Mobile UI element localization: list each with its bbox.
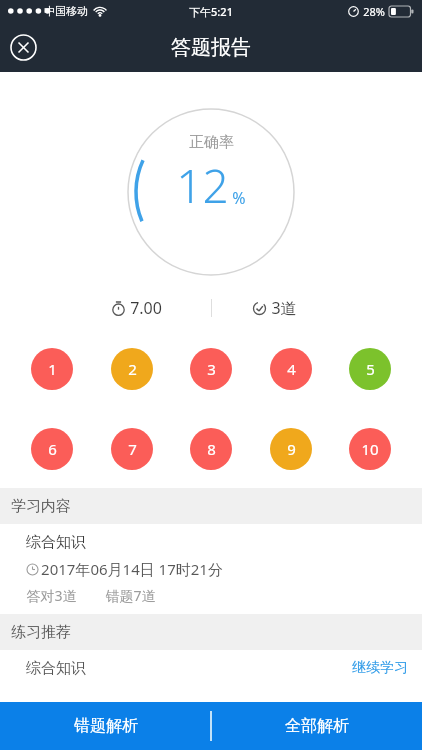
- staticText: 2017年06月14日 17时21分: [41, 559, 223, 579]
- button[interactable]: 7: [111, 428, 153, 470]
- staticText: 5: [366, 359, 375, 379]
- staticText: 答对3道: [26, 586, 77, 605]
- button[interactable]: 1: [31, 348, 73, 390]
- button[interactable]: 8: [190, 428, 232, 470]
- button[interactable]: 综合知识: [0, 524, 422, 614]
- staticText: 中国移动: [44, 4, 88, 18]
- button[interactable]: Close: [10, 34, 37, 61]
- staticText: 正确率: [189, 133, 234, 152]
- staticText: 7.00: [130, 297, 162, 319]
- staticText: 6: [48, 439, 57, 459]
- staticText: 综合知识: [26, 533, 86, 552]
- button[interactable]: 综合知识: [0, 650, 422, 686]
- button[interactable]: 5: [349, 348, 391, 390]
- staticText: 全部解析: [285, 716, 349, 736]
- staticText: 错题7道: [105, 586, 156, 605]
- staticText: 下午5:21: [189, 4, 233, 19]
- staticText: 4: [287, 359, 296, 379]
- staticText: 7: [128, 439, 137, 459]
- staticText: 10: [361, 439, 379, 459]
- staticText: %: [232, 187, 246, 209]
- staticText: 9: [287, 439, 296, 459]
- button[interactable]: 2: [111, 348, 153, 390]
- staticText: 12: [176, 154, 229, 217]
- staticText: 3: [207, 359, 216, 379]
- staticText: 练习推荐: [11, 623, 71, 642]
- staticText: 答题报告: [171, 35, 251, 60]
- staticText: 综合知识: [26, 659, 86, 678]
- button[interactable]: 3: [190, 348, 232, 390]
- staticText: 学习内容: [11, 497, 71, 516]
- button[interactable]: 4: [270, 348, 312, 390]
- staticText: 错题解析: [74, 716, 138, 736]
- staticText: 8: [207, 439, 216, 459]
- button[interactable]: 错题解析: [0, 702, 211, 750]
- staticText: 2: [128, 359, 137, 379]
- button[interactable]: 6: [31, 428, 73, 470]
- button[interactable]: 全部解析: [211, 702, 422, 750]
- button[interactable]: 10: [349, 428, 391, 470]
- staticText: 1: [48, 359, 57, 379]
- staticText: 继续学习: [352, 659, 408, 677]
- staticText: 3道: [271, 297, 297, 319]
- button[interactable]: 9: [270, 428, 312, 470]
- staticText: 28%: [363, 4, 385, 19]
